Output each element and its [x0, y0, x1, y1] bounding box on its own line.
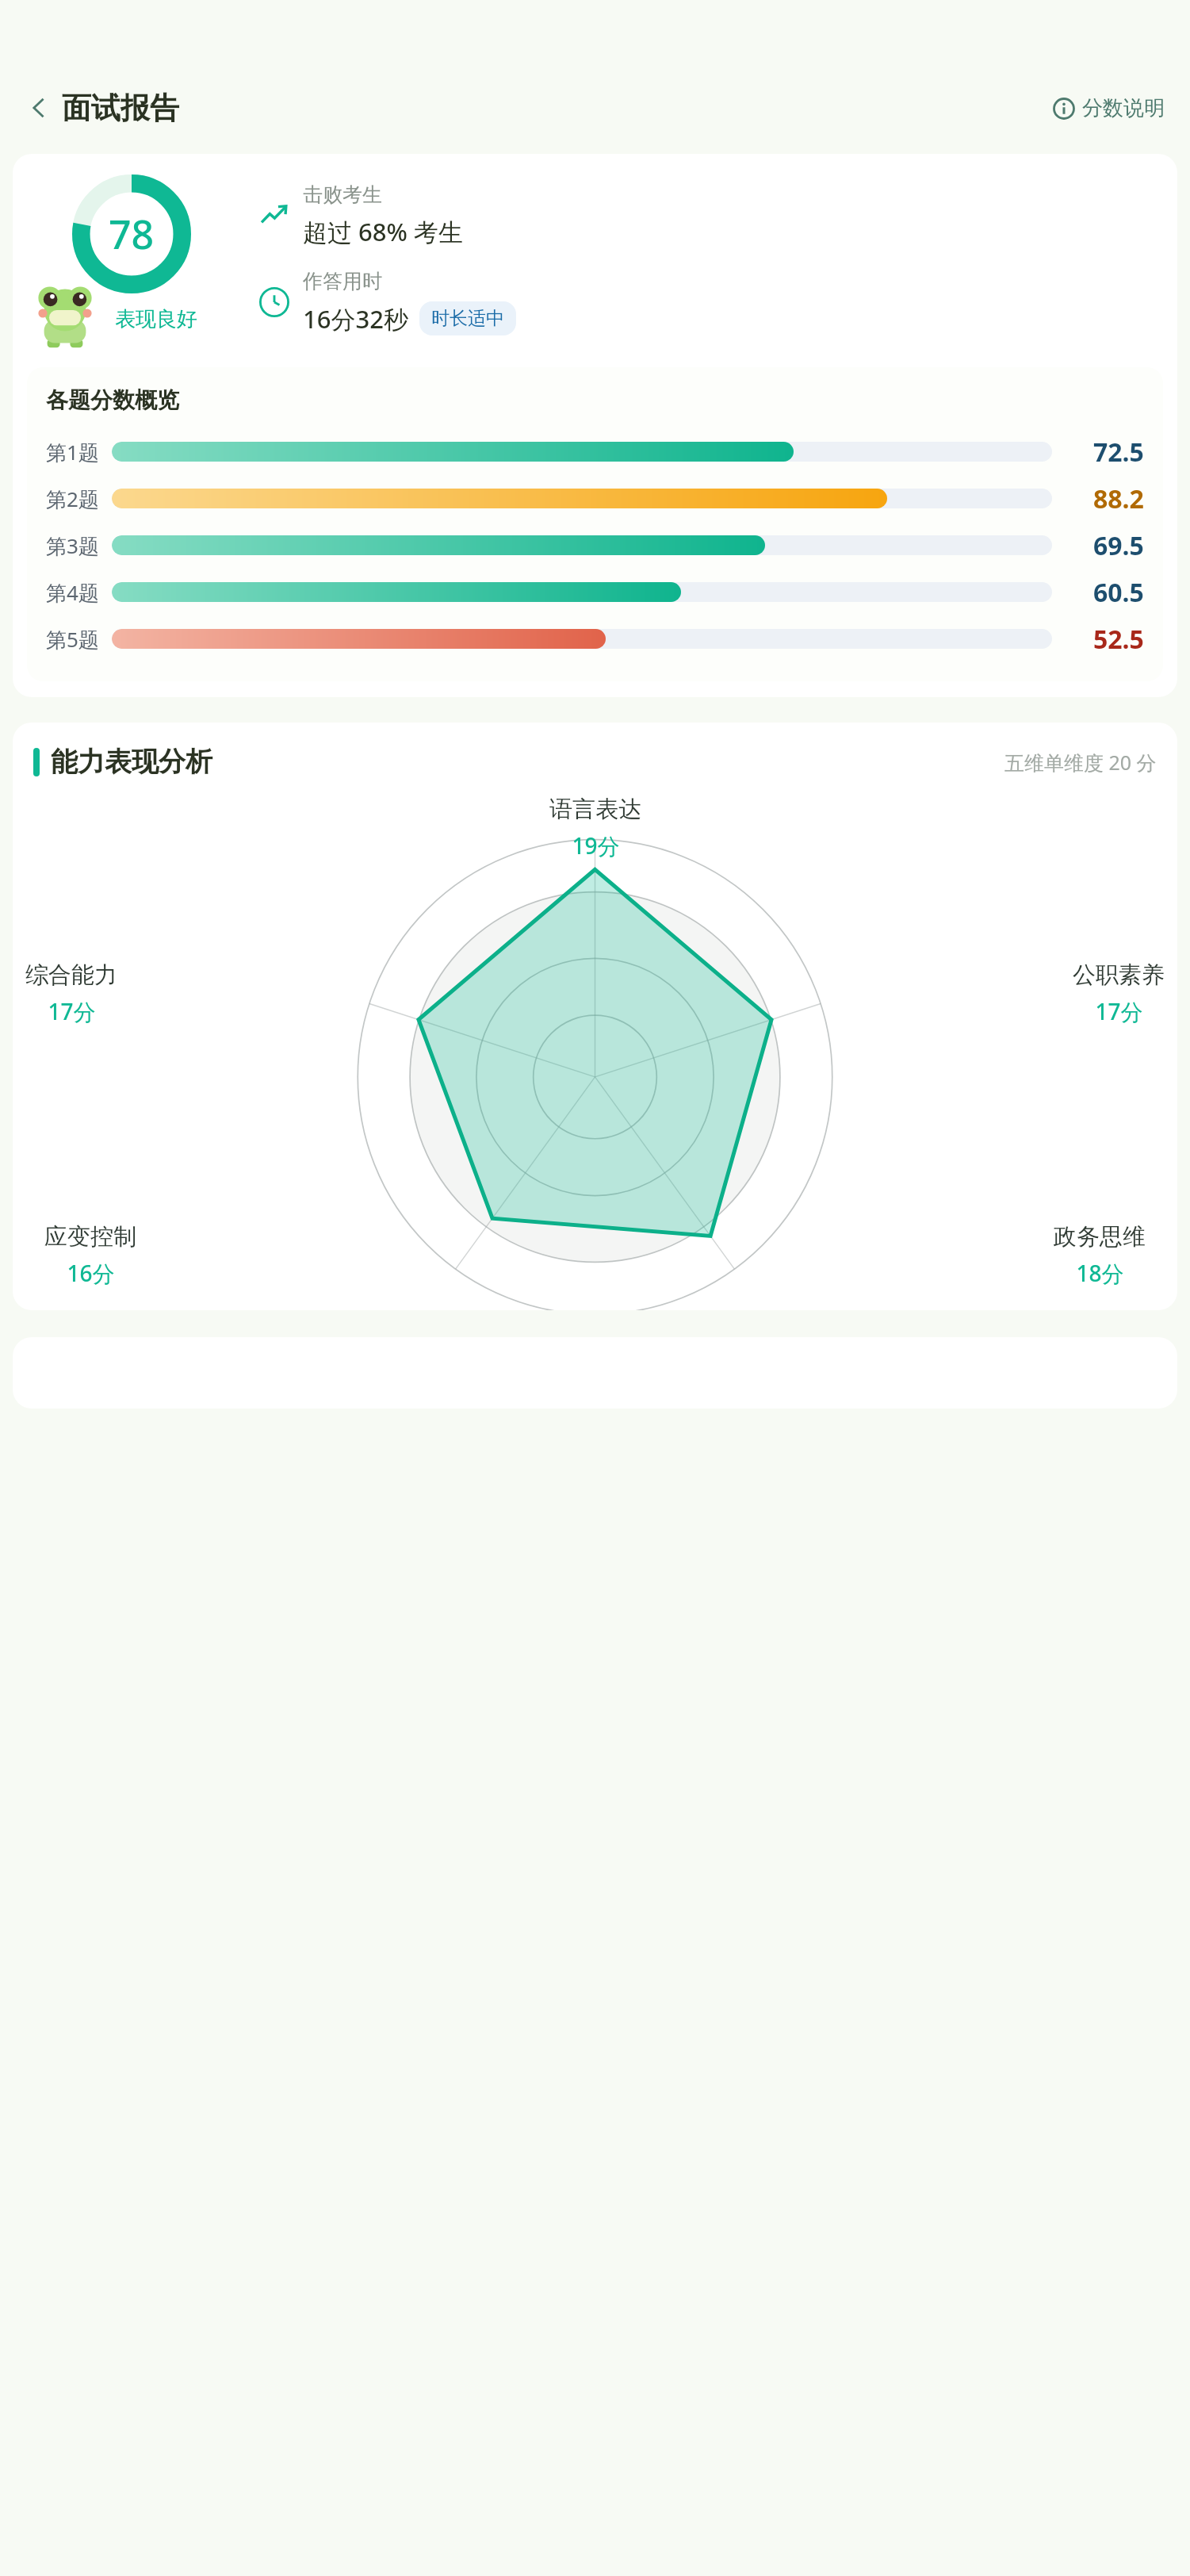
- staticText: 16分: [67, 1258, 115, 1288]
- staticText: 能力表现分析: [51, 745, 212, 779]
- staticText: 五维单维度 20 分: [1004, 749, 1157, 776]
- staticText: 第3题: [46, 531, 99, 560]
- staticText: 第2题: [46, 485, 99, 513]
- staticText: 表现良好: [115, 306, 197, 332]
- staticText: 第4题: [46, 578, 99, 607]
- button[interactable]: 第4题: [46, 569, 1144, 615]
- button[interactable]: 分数说明: [1047, 87, 1171, 129]
- staticText: 60.5: [1093, 575, 1144, 610]
- staticText: 政务思维: [1054, 1222, 1146, 1252]
- button[interactable]: 第3题: [46, 522, 1144, 569]
- staticText: 超过 68% 考生: [303, 215, 463, 248]
- staticText: 72.5: [1093, 435, 1144, 470]
- staticText: 各题分数概览: [46, 386, 179, 414]
- staticText: 69.5: [1093, 528, 1144, 563]
- staticText: 击败考生: [303, 182, 382, 207]
- staticText: 分数说明: [1082, 95, 1165, 121]
- staticText: 作答用时: [303, 269, 382, 293]
- button[interactable]: 第2题: [46, 475, 1144, 522]
- staticText: 综合能力: [25, 960, 117, 990]
- staticText: 17分: [48, 996, 96, 1026]
- button[interactable]: 表现良好: [99, 300, 213, 339]
- staticText: 第1题: [46, 438, 99, 466]
- staticText: 78: [109, 207, 155, 261]
- button[interactable]: 第5题: [46, 615, 1144, 662]
- staticText: 88.2: [1093, 481, 1144, 516]
- staticText: 17分: [1095, 996, 1143, 1026]
- staticText: 时长适中: [431, 307, 504, 330]
- staticText: 18分: [1076, 1258, 1124, 1288]
- button[interactable]: 第1题: [46, 428, 1144, 475]
- staticText: 应变控制: [44, 1222, 136, 1252]
- staticText: 第5题: [46, 625, 99, 654]
- staticText: 16分32秒: [303, 302, 408, 335]
- staticText: 公职素养: [1073, 960, 1165, 990]
- staticText: 52.5: [1093, 622, 1144, 657]
- button[interactable]: Back: [19, 88, 59, 128]
- staticText: 19分: [572, 830, 620, 861]
- staticText: 语言表达: [549, 795, 641, 824]
- staticText: 面试报告: [62, 90, 179, 127]
